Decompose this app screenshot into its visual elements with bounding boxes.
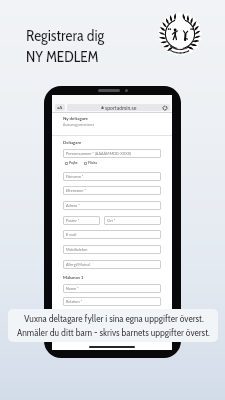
staticText: Adress *: [66, 203, 80, 208]
button[interactable]: sportadmin.se: [67, 104, 170, 111]
button[interactable]: Reload: [162, 105, 168, 111]
button[interactable]: E-mail: [63, 230, 161, 239]
other: Club logo: [156, 10, 204, 58]
button[interactable]: Personnummer * (ÅÅÅÅMMDD-XXXX): [63, 149, 161, 158]
staticText: Deltagare: [63, 140, 82, 145]
button[interactable]: Adress *: [63, 201, 161, 210]
staticText: Relation *: [66, 299, 83, 304]
staticText: Flicka: [88, 161, 98, 165]
staticText: Allergi/Matval: [66, 262, 90, 267]
staticText: Personnummer * (ÅÅÅÅMMDD-XXXX): [66, 151, 132, 156]
button[interactable]: Namn *: [63, 284, 161, 293]
staticText: Postnr *: [66, 218, 80, 223]
staticText: E-mail: [66, 232, 77, 237]
staticText: sportadmin.se: [105, 105, 137, 111]
button[interactable]: Mobiltelefon: [63, 245, 161, 254]
staticText: Mobiltelefon: [66, 247, 88, 252]
button[interactable]: Efternamn *: [63, 186, 161, 195]
button[interactable]: Ort *: [104, 216, 161, 225]
staticText: Anmäler du ditt barn - skrivs barnets up…: [17, 327, 210, 339]
staticText: Ny deltagare: [63, 116, 88, 121]
staticText: Registrera dig: [26, 26, 105, 45]
button[interactable]: Postnr *: [63, 216, 100, 225]
button[interactable]: aA: [55, 104, 65, 111]
button[interactable]: Pojke: [65, 161, 78, 165]
button[interactable]: Vuxna deltagare fyller i sina egna uppgi…: [8, 309, 218, 342]
staticText: Åsarumsgymnasterna: [63, 123, 95, 127]
staticText: Namn *: [66, 286, 79, 291]
staticText: aA: [57, 105, 63, 110]
staticText: Vuxna deltagare fyller i sina egna uppgi…: [24, 313, 204, 325]
staticText: Efternamn *: [66, 188, 86, 193]
button[interactable]: Förnamn *: [63, 172, 161, 181]
button[interactable]: Relation *: [63, 297, 161, 306]
button[interactable]: Allergi/Matval: [63, 260, 161, 269]
button[interactable]: Flicka: [84, 161, 98, 165]
staticText: Pojke: [69, 161, 78, 165]
staticText: Förnamn *: [66, 174, 84, 179]
staticText: Ort *: [107, 218, 116, 223]
staticText: NY MEDLEM: [26, 47, 99, 66]
staticText: Målsman 1: [63, 275, 84, 280]
